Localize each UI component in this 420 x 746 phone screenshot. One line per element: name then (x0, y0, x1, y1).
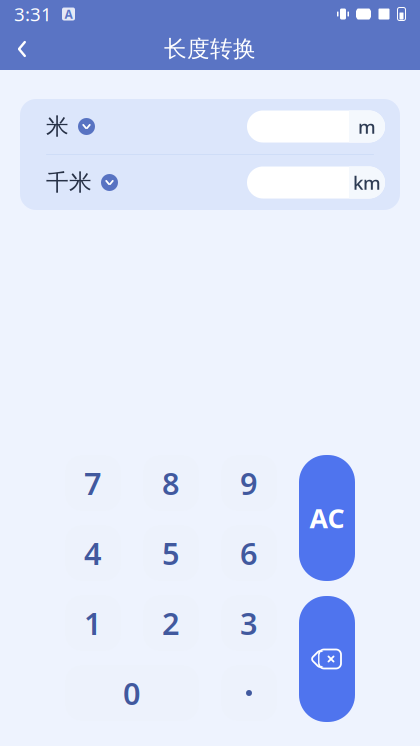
button[interactable]: m (247, 110, 385, 142)
button[interactable]: Back (0, 28, 44, 70)
staticText: 2 (162, 603, 180, 643)
staticText: 0 (123, 673, 141, 713)
staticText: 9 (240, 463, 258, 503)
staticText: 长度转换 (164, 35, 256, 63)
button[interactable]: 4 (65, 525, 121, 581)
button[interactable]: 7 (65, 455, 121, 511)
button[interactable]: 5 (143, 525, 199, 581)
staticText: 8 (162, 463, 180, 503)
staticText: m (358, 114, 376, 139)
button[interactable]: 9 (221, 455, 277, 511)
staticText: km (353, 170, 381, 195)
staticText: 1 (84, 603, 102, 643)
button[interactable] (221, 665, 277, 721)
staticText: 千米 (46, 169, 92, 196)
button[interactable]: 0 (65, 665, 199, 721)
staticText: 3:31 (14, 2, 52, 26)
staticText: AC (309, 500, 344, 536)
button[interactable]: AC (299, 455, 355, 581)
button[interactable]: Delete (299, 596, 355, 722)
staticText: 3 (240, 603, 258, 643)
button[interactable]: 1 (65, 595, 121, 651)
staticText: 5 (162, 533, 180, 573)
button[interactable]: 千米 (20, 155, 126, 210)
staticText: 米 (46, 113, 69, 140)
button[interactable]: km (247, 166, 385, 198)
staticText: A (64, 6, 72, 22)
staticText: 7 (84, 463, 102, 503)
button[interactable]: 6 (221, 525, 277, 581)
staticText: 6 (240, 533, 258, 573)
button[interactable]: 米 (20, 99, 103, 154)
button[interactable]: 8 (143, 455, 199, 511)
button[interactable]: 2 (143, 595, 199, 651)
button[interactable]: 3 (221, 595, 277, 651)
staticText: 4 (84, 533, 102, 573)
